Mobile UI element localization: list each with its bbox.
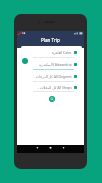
staticText: - كل الدرجات All Degrees <box>34 74 72 79</box>
button[interactable]: - كل الدرجات All Degrees <box>21 70 82 82</box>
button[interactable]: Location <box>22 58 28 64</box>
staticText: القاهرة Cairo <box>52 50 72 55</box>
staticText: الأسكندرية Alexandria <box>39 62 72 67</box>
button[interactable]: Search <box>49 96 55 102</box>
staticText: - كل المحلات All Shops <box>38 85 72 90</box>
button[interactable]: - كل المحلات All Shops <box>21 82 82 92</box>
staticText: Plan Trip <box>41 37 60 43</box>
button[interactable]: الأسكندرية Alexandria <box>21 58 82 70</box>
button[interactable]: القاهرة Cairo <box>21 46 82 58</box>
